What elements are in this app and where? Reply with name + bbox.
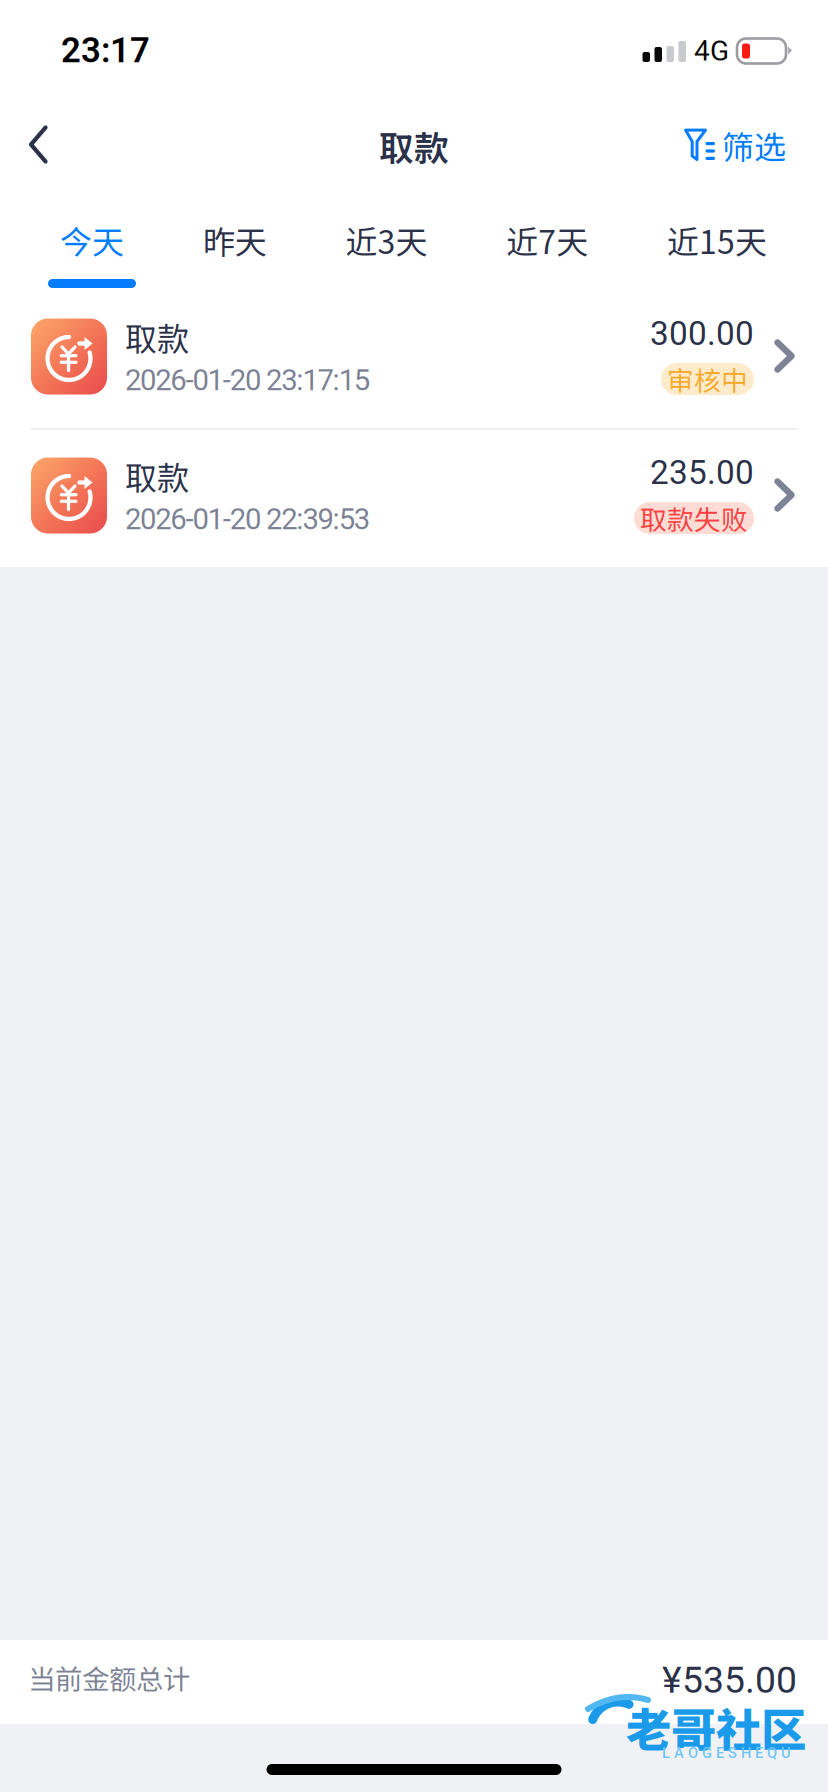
staticText: 4G	[694, 35, 729, 67]
staticText: 2026-01-20 23:17:15	[125, 363, 370, 397]
staticText: 筛选	[722, 122, 786, 168]
staticText: 审核中	[667, 360, 748, 398]
button[interactable]: 今天	[60, 188, 124, 291]
button[interactable]: 近15天	[667, 188, 767, 291]
staticText: 昨天	[203, 217, 267, 263]
staticText: LAOGESHEQU	[662, 1744, 791, 1762]
button[interactable]: 返回	[0, 94, 86, 186]
button[interactable]: 近3天	[345, 188, 427, 291]
staticText: 今天	[60, 217, 124, 263]
staticText: ¥535.00	[662, 1658, 797, 1702]
staticText: 取款	[125, 314, 189, 360]
button[interactable]: 筛选	[684, 94, 828, 186]
button[interactable]: 取款	[0, 291, 828, 428]
staticText: 取款	[379, 121, 449, 171]
staticText: 取款	[125, 453, 189, 499]
staticText: 235.00	[650, 453, 754, 492]
staticText: 当前金额总计	[28, 1658, 190, 1697]
staticText: 近7天	[506, 217, 588, 263]
staticText: 取款失败	[640, 499, 748, 537]
button[interactable]: 昨天	[203, 188, 267, 291]
staticText: 23:17	[61, 30, 150, 71]
staticText: 300.00	[650, 314, 754, 353]
staticText: 近3天	[345, 217, 427, 263]
button[interactable]: 取款	[0, 430, 828, 567]
staticText: 2026-01-20 22:39:53	[125, 502, 370, 536]
staticText: 老哥社区	[626, 1694, 806, 1760]
staticText: 近15天	[667, 217, 767, 263]
button[interactable]: 近7天	[506, 188, 588, 291]
